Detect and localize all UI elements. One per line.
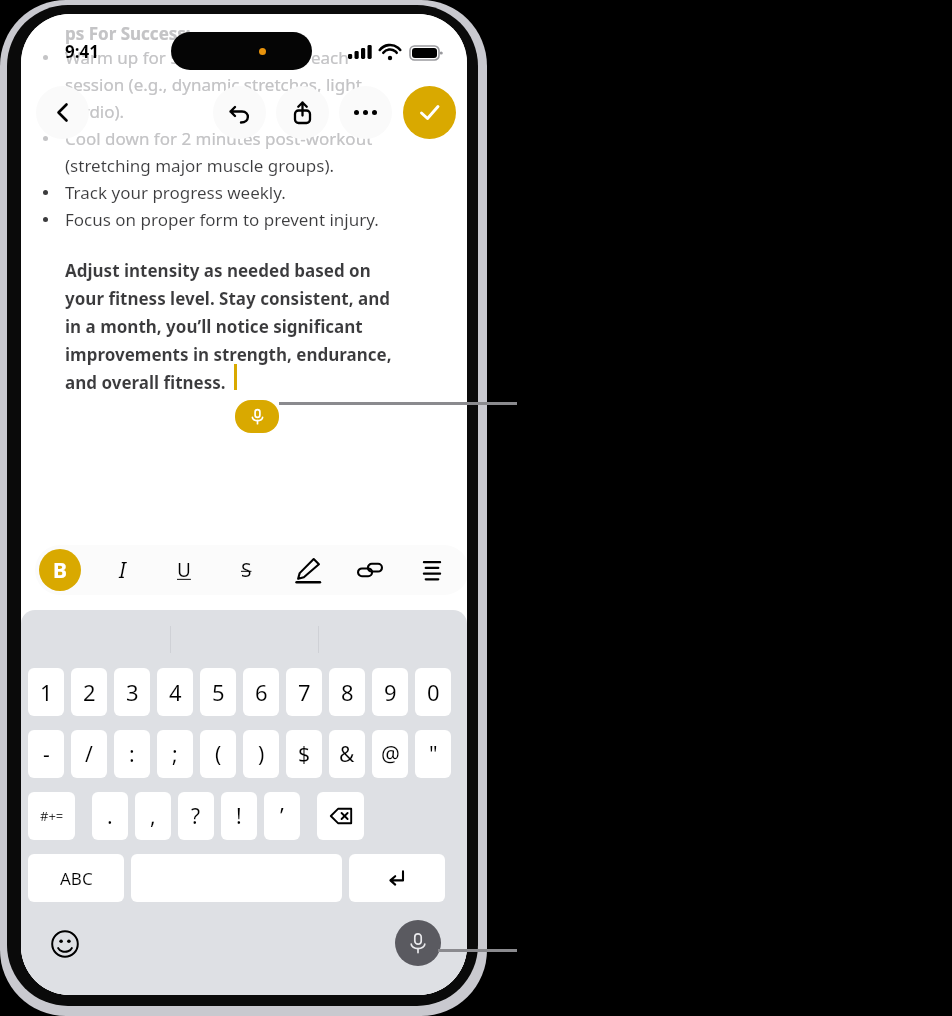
button[interactable]: S xyxy=(225,549,267,591)
button[interactable]: Back xyxy=(36,86,89,139)
staticText: 4 xyxy=(169,677,182,707)
staticText: 7 xyxy=(298,677,311,707)
staticText: Cool down for 2 minutes post-workout xyxy=(65,127,373,150)
staticText: 0 xyxy=(427,677,440,707)
staticText: " xyxy=(429,740,438,769)
button[interactable]: ? xyxy=(178,792,214,840)
staticText: 3 xyxy=(126,677,139,707)
button[interactable]: I xyxy=(101,549,143,591)
button[interactable]: 7 xyxy=(286,668,322,716)
button[interactable]: B xyxy=(39,549,81,591)
staticText: ; xyxy=(172,740,178,769)
staticText: #+= xyxy=(40,807,64,825)
staticText: B xyxy=(53,556,67,585)
button[interactable]: / xyxy=(71,730,107,778)
staticText: . xyxy=(107,802,113,831)
button[interactable]: ) xyxy=(243,730,279,778)
button[interactable]: 6 xyxy=(243,668,279,716)
button[interactable]: U xyxy=(163,549,205,591)
staticText: I xyxy=(119,556,126,585)
button[interactable]: Undo xyxy=(213,86,266,139)
staticText: $ xyxy=(298,740,311,769)
staticText: S xyxy=(241,557,252,583)
button[interactable]: " xyxy=(415,730,451,778)
staticText: improvements in strength, endurance, xyxy=(65,343,392,366)
button[interactable]: . xyxy=(92,792,128,840)
staticText: Track your progress weekly. xyxy=(65,181,286,204)
staticText: (stretching major muscle groups). xyxy=(65,154,335,177)
button[interactable]: Link xyxy=(349,549,391,591)
staticText: 5 xyxy=(212,677,225,707)
staticText: U xyxy=(177,557,191,583)
button[interactable]: Share xyxy=(276,86,329,139)
button[interactable]: Alignment xyxy=(411,549,453,591)
staticText: & xyxy=(339,740,355,769)
staticText: ps For Success: xyxy=(65,22,191,45)
button[interactable]: ( xyxy=(200,730,236,778)
staticText: , xyxy=(150,802,156,831)
button[interactable]: $ xyxy=(286,730,322,778)
button[interactable]: Delete xyxy=(317,792,364,840)
staticText: session (e.g., dynamic stretches, light xyxy=(65,73,362,96)
staticText: 2 xyxy=(83,677,96,707)
button[interactable]: @ xyxy=(372,730,408,778)
button[interactable]: Emoji xyxy=(47,926,83,962)
button[interactable]: : xyxy=(114,730,150,778)
button[interactable]: Done xyxy=(403,86,456,139)
staticText: ) xyxy=(258,740,265,769)
button[interactable]: ! xyxy=(221,792,257,840)
button[interactable]: Dictation xyxy=(235,400,279,433)
button[interactable]: 4 xyxy=(157,668,193,716)
staticText: 1 xyxy=(40,677,53,707)
button[interactable]: 3 xyxy=(114,668,150,716)
staticText: : xyxy=(129,740,135,769)
staticText: cardio). xyxy=(65,100,125,123)
staticText: your fitness level. Stay consistent, and xyxy=(65,287,390,310)
staticText: ABC xyxy=(60,867,93,890)
button[interactable]: & xyxy=(329,730,365,778)
button[interactable]: - xyxy=(28,730,64,778)
button[interactable]: 2 xyxy=(71,668,107,716)
staticText: Focus on proper form to prevent injury. xyxy=(65,208,379,231)
button[interactable]: #+= xyxy=(28,792,75,840)
staticText: and overall fitness. xyxy=(65,371,226,394)
button[interactable]: More options xyxy=(339,86,392,139)
staticText: 6 xyxy=(255,677,268,707)
staticText: 9:41 xyxy=(65,40,99,63)
button[interactable]: 9 xyxy=(372,668,408,716)
staticText: @ xyxy=(381,740,400,769)
button[interactable]: 0 xyxy=(415,668,451,716)
button[interactable]: ABC xyxy=(28,854,124,902)
button[interactable]: 1 xyxy=(28,668,64,716)
button[interactable]: Highlight xyxy=(287,549,329,591)
staticText: 8 xyxy=(341,677,354,707)
button[interactable]: 8 xyxy=(329,668,365,716)
button[interactable]: , xyxy=(135,792,171,840)
staticText: Warm up for 5 minutes before each xyxy=(65,46,349,69)
button[interactable]: 5 xyxy=(200,668,236,716)
staticText: ! xyxy=(236,802,242,831)
staticText: 9 xyxy=(384,677,397,707)
staticText: - xyxy=(43,740,50,769)
staticText: in a month, you’ll notice significant xyxy=(65,315,363,338)
staticText: ’ xyxy=(280,802,284,831)
button[interactable]: ; xyxy=(157,730,193,778)
button[interactable]: Return xyxy=(349,854,445,902)
staticText: / xyxy=(85,740,93,769)
staticText: Adjust intensity as needed based on xyxy=(65,259,371,282)
staticText: ( xyxy=(215,740,222,769)
button[interactable]: ’ xyxy=(264,792,300,840)
button[interactable]: Dictation xyxy=(395,920,441,966)
staticText: ? xyxy=(191,802,201,831)
